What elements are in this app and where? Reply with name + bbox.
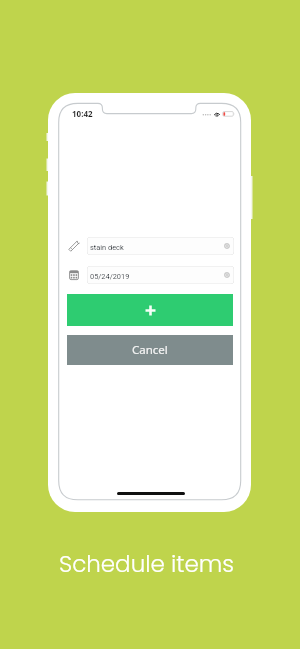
button[interactable]: 05/24/2019 [87, 266, 234, 284]
staticText: 05/24/2019 [90, 272, 130, 281]
button[interactable]: Cancel [67, 335, 233, 365]
button[interactable]: stain deck [87, 237, 234, 255]
staticText: Schedule items [59, 548, 235, 580]
button[interactable]: Add [67, 294, 233, 326]
staticText: stain deck [90, 243, 124, 252]
staticText: 10:42 [72, 108, 93, 119]
staticText: Cancel [132, 342, 168, 358]
